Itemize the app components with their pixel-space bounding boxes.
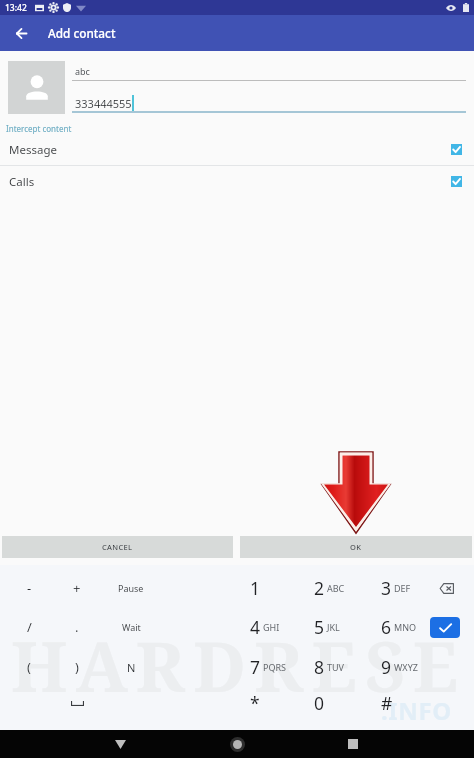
staticText: .INFO <box>381 694 452 727</box>
staticText: Wait <box>122 621 141 633</box>
staticText: 2 <box>314 576 325 600</box>
button[interactable]: Pause <box>109 571 153 605</box>
button[interactable]: Calls <box>0 166 474 197</box>
staticText: ABC <box>327 582 345 594</box>
staticText: PQRS <box>263 661 287 673</box>
button[interactable]: Back <box>98 730 142 758</box>
staticText: Add contact <box>48 25 116 41</box>
button[interactable]: 1 <box>236 571 296 605</box>
staticText: Message <box>9 142 57 158</box>
button[interactable]: 2 <box>300 571 360 605</box>
staticText: - <box>27 579 32 597</box>
staticText: 8 <box>314 655 325 679</box>
button[interactable]: + <box>55 571 99 605</box>
staticText: WXYZ <box>394 661 418 673</box>
staticText: Calls <box>9 174 35 190</box>
button[interactable]: 5 <box>300 610 360 644</box>
button[interactable]: Contact photo <box>8 61 65 114</box>
staticText: 13:42 <box>5 2 27 14</box>
staticText: Intercept content <box>6 123 72 134</box>
staticText: MNO <box>394 621 417 633</box>
button[interactable]: OK <box>240 536 472 558</box>
button[interactable]: Recent apps <box>331 730 375 758</box>
staticText: DEF <box>394 582 411 594</box>
button[interactable]: N <box>109 650 153 684</box>
button[interactable]: 3 <box>367 571 427 605</box>
staticText: . <box>75 618 79 636</box>
staticText: / <box>27 618 32 636</box>
button[interactable]: ( <box>7 650 51 684</box>
button[interactable]: - <box>7 571 51 605</box>
staticText: 0 <box>314 691 325 715</box>
button[interactable]: Navigate up <box>0 15 42 51</box>
staticText: GHI <box>263 621 280 633</box>
button[interactable]: 4 <box>236 610 296 644</box>
button[interactable]: Wait <box>109 610 153 644</box>
button[interactable]: # <box>367 686 427 720</box>
button[interactable]: 8 <box>300 650 360 684</box>
button[interactable]: 6 <box>367 610 427 644</box>
staticText: ( <box>27 658 31 676</box>
staticText: Pause <box>118 582 144 594</box>
staticText: OK <box>350 542 362 552</box>
staticText: abc <box>75 65 90 77</box>
staticText: TUV <box>327 661 344 673</box>
button[interactable]: CANCEL <box>2 536 233 558</box>
staticText: ) <box>75 658 79 676</box>
button[interactable]: 0 <box>300 686 360 720</box>
button[interactable]: Enter <box>430 617 460 638</box>
staticText: 6 <box>381 615 392 639</box>
button[interactable]: . <box>55 610 99 644</box>
staticText: HARDRESET <box>11 618 474 758</box>
button[interactable]: 9 <box>367 650 427 684</box>
staticText: CANCEL <box>102 542 133 552</box>
button[interactable]: ) <box>55 650 99 684</box>
button[interactable]: 7 <box>236 650 296 684</box>
button[interactable]: Space <box>57 689 97 717</box>
button[interactable]: Home <box>215 730 259 758</box>
staticText: 3 <box>381 576 392 600</box>
staticText: 333444555 <box>75 96 132 111</box>
button[interactable]: Message <box>0 134 474 165</box>
staticText: 4 <box>250 615 261 639</box>
staticText: 5 <box>314 615 325 639</box>
staticText: JKL <box>327 621 340 633</box>
staticText: N <box>127 660 136 675</box>
staticText: * <box>250 691 260 715</box>
button[interactable]: Delete <box>431 574 461 602</box>
staticText: + <box>73 579 81 597</box>
staticText: 9 <box>381 655 392 679</box>
staticText: 7 <box>250 655 261 679</box>
staticText: # <box>381 691 393 715</box>
button[interactable]: / <box>7 610 51 644</box>
button[interactable]: * <box>236 686 296 720</box>
staticText: 1 <box>250 576 261 600</box>
